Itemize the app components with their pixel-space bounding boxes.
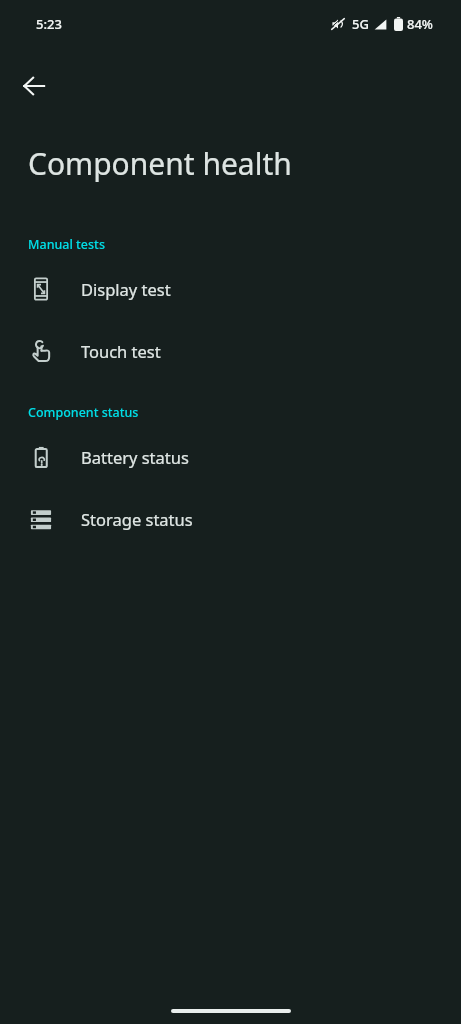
staticText: Storage status bbox=[81, 508, 193, 530]
staticText: Battery status bbox=[81, 446, 189, 468]
staticText: 5G bbox=[352, 15, 369, 33]
button[interactable]: Display test bbox=[0, 258, 461, 320]
staticText: Component health bbox=[28, 143, 292, 184]
staticText: 84% bbox=[407, 15, 433, 33]
button[interactable]: Battery status bbox=[0, 426, 461, 488]
staticText: Display test bbox=[81, 278, 171, 300]
staticText: Touch test bbox=[81, 340, 161, 362]
button[interactable]: Back bbox=[10, 62, 58, 110]
staticText: Component status bbox=[28, 404, 139, 421]
button[interactable]: Touch test bbox=[0, 320, 461, 382]
button[interactable]: Storage status bbox=[0, 488, 461, 550]
staticText: 5:23 bbox=[36, 15, 62, 33]
staticText: Manual tests bbox=[28, 236, 105, 253]
